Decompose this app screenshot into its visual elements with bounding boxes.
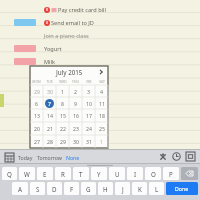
button[interactable]: 27 bbox=[30, 135, 43, 148]
button[interactable]: 3 bbox=[82, 85, 95, 97]
button[interactable]: 9 bbox=[69, 97, 82, 109]
staticText: 3 bbox=[87, 88, 90, 95]
button[interactable]: D bbox=[47, 182, 62, 195]
button[interactable]: 1 bbox=[56, 85, 69, 97]
button[interactable]: July 2015 bbox=[30, 66, 108, 148]
staticText: Y bbox=[97, 170, 101, 178]
button[interactable]: W bbox=[19, 167, 35, 180]
button[interactable]: 30 bbox=[69, 135, 82, 148]
button[interactable]: A bbox=[12, 182, 28, 195]
button[interactable]: Send email to JD bbox=[0, 16, 200, 29]
button[interactable]: Milk bbox=[0, 55, 200, 68]
staticText: Milk bbox=[44, 58, 55, 66]
button[interactable]: 7 bbox=[43, 97, 56, 109]
button[interactable]: H bbox=[98, 182, 113, 195]
button[interactable]: Today bbox=[18, 154, 33, 161]
button[interactable]: Y bbox=[91, 167, 107, 180]
staticText: 4 bbox=[100, 88, 103, 95]
button[interactable]: 20 bbox=[30, 122, 43, 135]
button[interactable]: 18 bbox=[95, 109, 108, 122]
staticText: I bbox=[134, 170, 137, 178]
button[interactable]: 13 bbox=[30, 109, 43, 122]
button[interactable]: 15 bbox=[56, 109, 69, 122]
staticText: 20 bbox=[34, 125, 40, 132]
button[interactable]: Backspace bbox=[181, 167, 198, 180]
button[interactable]: Join a piano class bbox=[0, 29, 200, 42]
button[interactable]: 6 bbox=[30, 97, 43, 109]
button[interactable]: L bbox=[149, 182, 164, 195]
staticText: 29 bbox=[34, 88, 40, 95]
button[interactable]: Pay credit card bill bbox=[0, 3, 200, 16]
button[interactable]: 22 bbox=[56, 122, 69, 135]
button[interactable]: 30 bbox=[43, 85, 56, 97]
button[interactable]: R bbox=[55, 167, 71, 180]
button[interactable]: Yogurt bbox=[0, 42, 200, 55]
staticText: Today bbox=[18, 154, 33, 161]
button[interactable]: 21 bbox=[43, 122, 56, 135]
button[interactable]: O bbox=[145, 167, 161, 180]
button[interactable]: 2 bbox=[69, 85, 82, 97]
staticText: Done bbox=[175, 185, 189, 192]
button[interactable]: 31 bbox=[82, 135, 95, 148]
staticText: Yogurt bbox=[44, 45, 62, 53]
button[interactable]: 25 bbox=[95, 122, 108, 135]
staticText: SAT bbox=[99, 79, 105, 84]
button[interactable]: None bbox=[66, 154, 80, 161]
staticText: Join a piano class bbox=[44, 32, 89, 40]
button[interactable]: G bbox=[81, 182, 96, 195]
staticText: 13 bbox=[34, 112, 40, 119]
staticText: 15 bbox=[60, 112, 66, 119]
button[interactable]: Pin bbox=[157, 151, 168, 162]
button[interactable]: 29 bbox=[30, 85, 43, 97]
staticText: T bbox=[79, 170, 83, 178]
button[interactable]: J bbox=[115, 182, 130, 195]
staticText: 29 bbox=[60, 138, 66, 145]
button[interactable]: U bbox=[109, 167, 125, 180]
button[interactable]: S bbox=[30, 182, 45, 195]
button[interactable]: Note bbox=[185, 151, 196, 162]
staticText: K bbox=[138, 185, 142, 193]
button[interactable]: 4 bbox=[95, 85, 108, 97]
staticText: S bbox=[36, 185, 40, 193]
button[interactable]: Done bbox=[166, 182, 198, 195]
button[interactable]: Tomorrow bbox=[37, 154, 62, 161]
button[interactable]: 29 bbox=[56, 135, 69, 148]
button[interactable]: 16 bbox=[69, 109, 82, 122]
staticText: 8 bbox=[61, 100, 64, 107]
button[interactable]: 23 bbox=[69, 122, 82, 135]
staticText: 14 bbox=[47, 112, 53, 119]
staticText: G bbox=[86, 185, 91, 193]
staticText: 2 bbox=[74, 88, 77, 95]
staticText: 17 bbox=[86, 112, 92, 119]
staticText: 21 bbox=[47, 125, 53, 132]
staticText: 11 bbox=[99, 100, 105, 107]
button[interactable]: P bbox=[163, 167, 179, 180]
button[interactable]: F bbox=[64, 182, 79, 195]
button[interactable]: Calendar bbox=[4, 152, 14, 162]
staticText: J bbox=[122, 185, 124, 193]
button[interactable]: K bbox=[132, 182, 147, 195]
staticText: 7 bbox=[48, 100, 51, 107]
staticText: MON bbox=[32, 79, 41, 84]
staticText: 27 bbox=[34, 138, 40, 145]
button[interactable]: E bbox=[37, 167, 53, 180]
staticText: 1 bbox=[61, 88, 64, 95]
button[interactable]: 17 bbox=[82, 109, 95, 122]
button[interactable]: 28 bbox=[43, 135, 56, 148]
staticText: 30 bbox=[47, 88, 53, 95]
staticText: 18 bbox=[99, 112, 105, 119]
button[interactable]: Q bbox=[2, 167, 17, 180]
button[interactable]: T bbox=[73, 167, 89, 180]
button[interactable]: 10 bbox=[82, 97, 95, 109]
button[interactable]: 14 bbox=[43, 109, 56, 122]
button[interactable]: 24 bbox=[82, 122, 95, 135]
button[interactable]: Next month bbox=[97, 68, 105, 76]
button[interactable]: 8 bbox=[56, 97, 69, 109]
button[interactable]: 1 bbox=[95, 135, 108, 148]
button[interactable]: 11 bbox=[95, 97, 108, 109]
staticText: 24 bbox=[86, 125, 92, 132]
staticText: 30 bbox=[73, 138, 79, 145]
button[interactable]: Reminder bbox=[171, 151, 182, 162]
button[interactable]: I bbox=[127, 167, 143, 180]
staticText: Tomorrow bbox=[37, 154, 62, 161]
